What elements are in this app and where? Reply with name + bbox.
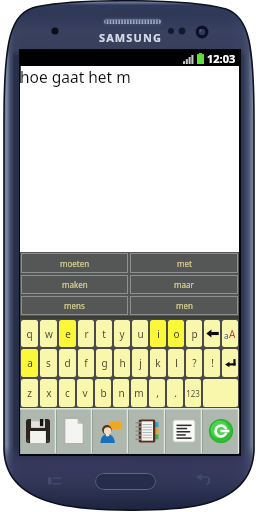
staticText: r — [84, 327, 89, 341]
button[interactable]: men — [130, 296, 238, 315]
staticText: ! — [211, 356, 214, 370]
staticText: ? — [192, 356, 197, 370]
button[interactable]: a — [21, 349, 38, 377]
button[interactable]: d — [59, 349, 76, 377]
button[interactable]: p — [186, 320, 202, 347]
button[interactable]: Contacts — [92, 408, 128, 454]
staticText: d — [64, 356, 71, 370]
button[interactable]: j — [132, 349, 148, 377]
staticText: n — [118, 386, 125, 400]
staticText: SAMSUNG — [99, 30, 163, 45]
button[interactable]: i — [150, 320, 166, 347]
button[interactable]: Shift — [222, 320, 238, 347]
button[interactable]: Enter — [222, 349, 238, 377]
button[interactable]: maar — [130, 275, 238, 294]
staticText: z — [27, 386, 32, 400]
button[interactable]: h — [114, 349, 130, 377]
button[interactable]: q — [21, 320, 38, 347]
button[interactable]: 123 — [185, 379, 201, 407]
staticText: m — [134, 386, 144, 400]
staticText: y — [119, 327, 125, 341]
staticText: maken — [62, 279, 88, 290]
button[interactable]: x — [40, 379, 57, 407]
button[interactable]: l — [168, 349, 184, 377]
staticText: 123 — [186, 388, 200, 399]
staticText: maar — [174, 279, 194, 290]
button[interactable]: Save — [20, 408, 56, 454]
button[interactable]: maken — [21, 275, 128, 294]
staticText: l — [175, 356, 178, 370]
button[interactable]: z — [21, 379, 38, 407]
button[interactable]: t — [96, 320, 112, 347]
staticText: men — [176, 300, 193, 311]
button[interactable]: Space — [203, 379, 238, 407]
button[interactable]: Text — [165, 408, 202, 454]
staticText: e — [65, 327, 71, 341]
button[interactable]: met — [130, 253, 238, 273]
staticText: s — [46, 356, 51, 370]
staticText: h — [119, 356, 126, 370]
button[interactable]: Backspace — [204, 320, 220, 347]
button[interactable]: m — [131, 379, 147, 407]
button[interactable]: . — [167, 379, 183, 407]
staticText: t — [102, 327, 106, 341]
button[interactable]: Notebook — [128, 408, 165, 454]
staticText: w — [45, 327, 53, 341]
button[interactable]: k — [150, 349, 166, 377]
staticText: met — [177, 258, 192, 269]
staticText: u — [137, 327, 144, 341]
button[interactable]: New document — [56, 408, 92, 454]
staticText: moeten — [60, 258, 90, 269]
staticText: g — [101, 356, 108, 370]
button[interactable]: e — [59, 320, 76, 347]
staticText: i — [157, 327, 160, 341]
button[interactable]: v — [77, 379, 93, 407]
button[interactable]: b — [95, 379, 111, 407]
staticText: mens — [64, 300, 85, 311]
staticText: k — [155, 356, 161, 370]
button[interactable]: Power — [202, 408, 239, 454]
button[interactable]: mens — [21, 296, 128, 315]
button[interactable]: s — [40, 349, 57, 377]
button[interactable]: y — [114, 320, 130, 347]
button[interactable]: moeten — [21, 253, 128, 273]
button[interactable]: g — [96, 349, 112, 377]
staticText: o — [173, 327, 180, 341]
staticText: , — [156, 386, 159, 400]
staticText: j — [139, 356, 142, 370]
staticText: q — [26, 327, 33, 341]
button[interactable]: u — [132, 320, 148, 347]
staticText: c — [65, 386, 70, 400]
staticText: 12:03 — [207, 51, 236, 66]
button[interactable]: f — [78, 349, 94, 377]
button[interactable]: ? — [186, 349, 202, 377]
staticText: x — [46, 386, 52, 400]
button[interactable]: w — [40, 320, 57, 347]
button[interactable]: ! — [204, 349, 220, 377]
button[interactable]: n — [113, 379, 129, 407]
staticText: b — [100, 386, 107, 400]
button[interactable]: c — [59, 379, 75, 407]
button[interactable]: Home — [95, 473, 156, 490]
staticText: f — [84, 356, 88, 370]
button[interactable]: r — [78, 320, 94, 347]
staticText: A — [229, 327, 236, 341]
staticText: a — [27, 356, 33, 370]
button[interactable]: o — [168, 320, 184, 347]
staticText: . — [174, 386, 177, 400]
button[interactable]: , — [149, 379, 165, 407]
staticText: a — [224, 330, 229, 341]
staticText: p — [191, 327, 198, 341]
staticText: hoe gaat het m — [20, 66, 131, 87]
staticText: v — [82, 386, 88, 400]
